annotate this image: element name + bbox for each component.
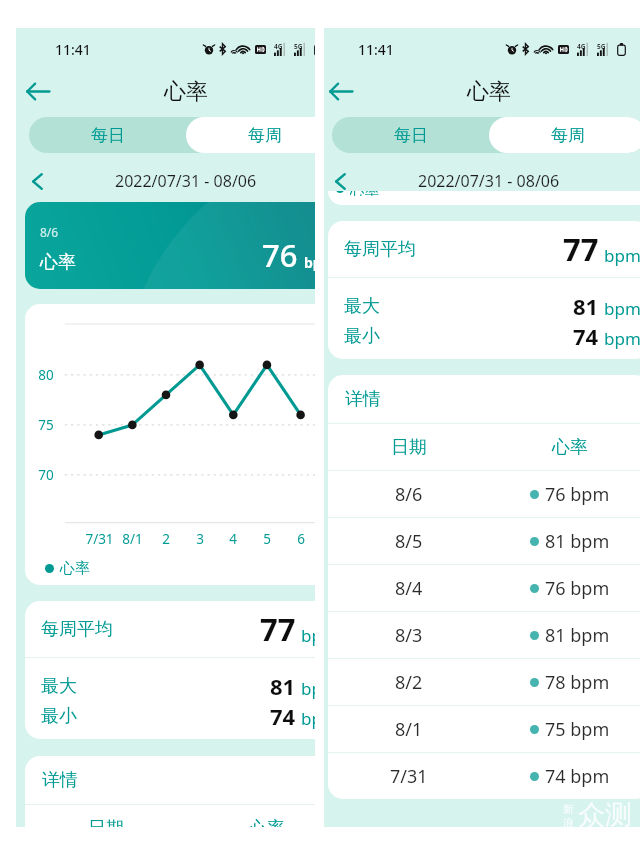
staticText: 11:41: [55, 40, 91, 59]
staticText: 81: [573, 291, 599, 321]
button[interactable]: 7/31: [328, 753, 640, 799]
staticText: 4G: [577, 42, 586, 51]
staticText: 74 bpm: [545, 764, 610, 789]
button[interactable]: 8/4: [328, 565, 640, 611]
staticText: 2: [162, 530, 170, 548]
button[interactable]: Back: [16, 69, 61, 114]
staticText: 8/6: [395, 482, 423, 507]
button[interactable]: 每日: [332, 117, 489, 153]
button[interactable]: Back: [324, 69, 364, 114]
staticText: 心率: [60, 559, 90, 578]
button[interactable]: 每周平均: [328, 221, 640, 277]
button[interactable]: 8/2: [328, 659, 640, 705]
staticText: bpm: [301, 624, 315, 647]
staticText: 8/5: [395, 529, 423, 554]
button[interactable]: 最大: [328, 291, 640, 321]
button[interactable]: 每日: [29, 117, 186, 153]
staticText: 最小: [41, 705, 77, 728]
staticText: 8/1: [395, 717, 423, 742]
staticText: bpm: [301, 677, 315, 700]
button[interactable]: 8/1: [328, 706, 640, 752]
button[interactable]: 8/3: [328, 612, 640, 658]
staticText: 众测: [578, 798, 632, 832]
staticText: 日期: [88, 817, 124, 827]
staticText: 每日: [91, 125, 125, 146]
staticText: 75: [38, 416, 54, 434]
staticText: 每周: [551, 125, 585, 146]
button[interactable]: 最小: [328, 321, 640, 351]
staticText: 77: [563, 228, 599, 270]
staticText: 4G: [274, 42, 283, 51]
staticText: 8/4: [395, 576, 423, 601]
staticText: bpm: [301, 707, 315, 730]
button[interactable]: 最大: [25, 671, 315, 701]
staticText: 2022/07/31 - 08/06: [418, 170, 560, 192]
staticText: 最小: [344, 325, 380, 348]
staticText: 7/31: [85, 530, 114, 548]
staticText: 76: [262, 234, 298, 276]
staticText: 详情: [345, 388, 381, 411]
staticText: 6: [297, 530, 305, 548]
button[interactable]: 8/5: [328, 518, 640, 564]
staticText: 76 bpm: [545, 576, 610, 601]
button[interactable]: Previous week: [324, 164, 357, 198]
staticText: 70: [38, 466, 54, 484]
staticText: 每周平均: [41, 618, 113, 641]
staticText: 浪: [563, 816, 574, 830]
staticText: 81 bpm: [545, 529, 610, 554]
staticText: 心率: [249, 817, 285, 827]
staticText: 74: [573, 321, 599, 351]
button[interactable]: 每周平均: [25, 601, 315, 657]
staticText: 心率: [467, 78, 511, 106]
staticText: 心率: [552, 436, 588, 459]
staticText: bpm: [604, 244, 640, 267]
staticText: 5G: [597, 42, 606, 51]
staticText: 最大: [41, 675, 77, 698]
staticText: bpm: [604, 297, 640, 320]
staticText: 7/31: [390, 764, 428, 789]
staticText: 2022/07/31 - 08/06: [115, 170, 257, 192]
staticText: 5G: [294, 42, 303, 51]
staticText: 8/2: [395, 670, 423, 695]
staticText: 78 bpm: [545, 670, 610, 695]
staticText: 4: [229, 530, 237, 548]
button[interactable]: 8/6: [328, 471, 640, 517]
staticText: 详情: [42, 769, 78, 792]
staticText: 心率: [350, 191, 379, 196]
staticText: 8/3: [395, 623, 423, 648]
staticText: 11:41: [358, 40, 394, 59]
staticText: 新: [563, 802, 574, 816]
button[interactable]: 最小: [25, 701, 315, 731]
button[interactable]: 8/6: [25, 202, 315, 289]
staticText: 75 bpm: [545, 717, 610, 742]
staticText: 8/6: [40, 224, 59, 240]
staticText: 5: [263, 530, 271, 548]
button[interactable]: 每周: [489, 117, 640, 153]
staticText: 心率: [164, 78, 208, 106]
staticText: 8/1: [122, 530, 143, 548]
staticText: 每日: [394, 125, 428, 146]
staticText: 76 bpm: [545, 482, 610, 507]
staticText: 77: [260, 608, 296, 650]
staticText: 81 bpm: [545, 623, 610, 648]
staticText: 74: [270, 701, 296, 731]
staticText: bpm: [304, 253, 315, 272]
button[interactable]: Previous week: [20, 164, 54, 198]
staticText: 81: [270, 671, 296, 701]
staticText: bpm: [604, 327, 640, 350]
staticText: 每周平均: [344, 238, 416, 261]
staticText: 80: [38, 366, 54, 384]
staticText: 心率: [40, 251, 76, 274]
staticText: 每周: [248, 125, 282, 146]
staticText: 日期: [391, 436, 427, 459]
button[interactable]: 每周: [186, 117, 315, 153]
staticText: 最大: [344, 295, 380, 318]
staticText: 3: [196, 530, 204, 548]
